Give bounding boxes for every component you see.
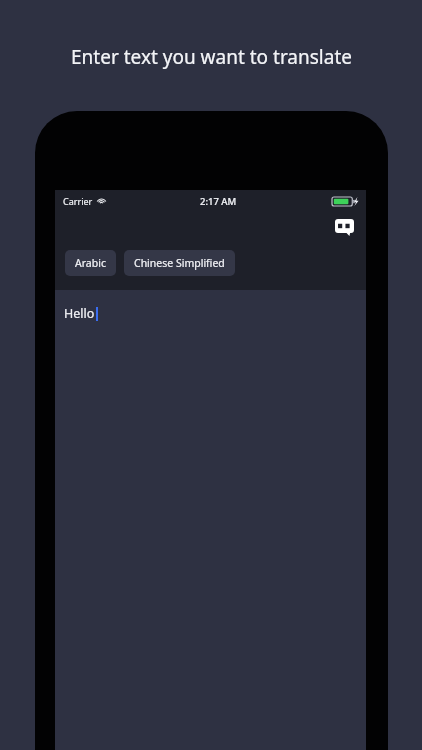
button[interactable]: Hello: [55, 290, 366, 750]
staticText: Enter text you want to translate: [71, 44, 352, 70]
button[interactable]: Translate keyboard: [335, 219, 354, 236]
staticText: Chinese Simplified: [134, 256, 225, 270]
staticText: 2:17 AM: [200, 195, 237, 208]
button[interactable]: Chinese Simplified: [124, 250, 235, 276]
staticText: Carrier: [63, 195, 93, 207]
staticText: Hello: [64, 305, 95, 322]
staticText: Arabic: [75, 256, 106, 270]
button[interactable]: Arabic: [65, 250, 116, 276]
